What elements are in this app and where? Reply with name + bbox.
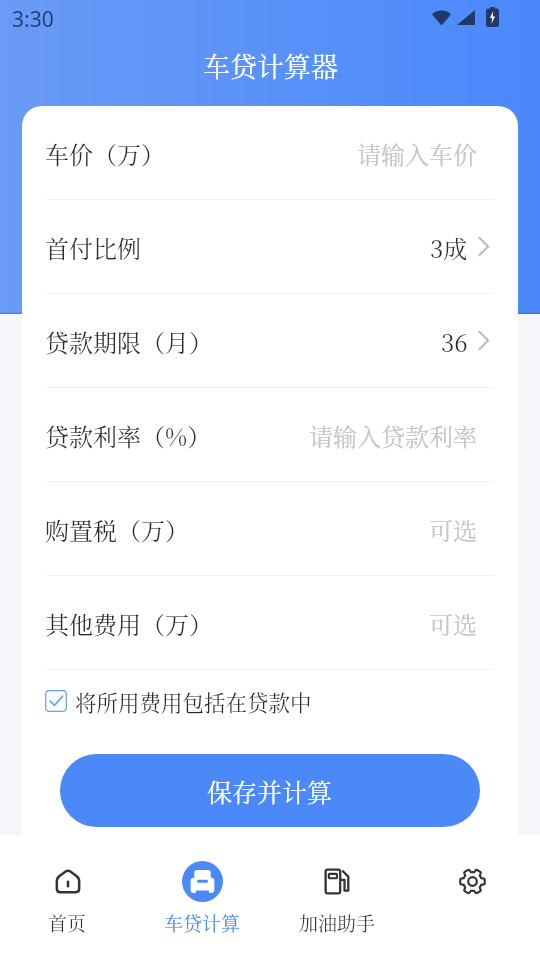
staticText: 将所用费用包括在贷款中 xyxy=(75,686,312,717)
staticText: 首页 xyxy=(48,909,87,936)
staticText: 车贷计算器 xyxy=(203,46,338,85)
button[interactable]: 其他费用（万） xyxy=(22,576,518,669)
staticText: 请输入贷款利率 xyxy=(309,418,477,452)
button[interactable]: Home xyxy=(0,835,135,960)
staticText: 加油助手 xyxy=(299,909,376,936)
button[interactable]: Car loan xyxy=(135,835,270,960)
button[interactable]: 贷款期限（月） xyxy=(22,294,518,387)
staticText: 请输入车价 xyxy=(357,136,477,170)
button[interactable]: Refuel xyxy=(270,835,405,960)
staticText: 3成 xyxy=(430,230,468,264)
staticText: 车价（万） xyxy=(45,136,165,170)
staticText: 贷款期限（月） xyxy=(45,324,213,358)
button[interactable]: 购置税（万） xyxy=(22,482,518,575)
button[interactable]: Settings xyxy=(405,835,540,960)
staticText: 其他费用（万） xyxy=(45,606,213,640)
staticText: 可选 xyxy=(429,512,477,546)
staticText: 保存并计算 xyxy=(207,773,333,809)
button[interactable]: 首付比例 xyxy=(22,200,518,293)
button[interactable]: 将所用费用包括在贷款中 xyxy=(22,670,518,732)
staticText: 36 xyxy=(441,324,468,358)
staticText: 可选 xyxy=(429,606,477,640)
button[interactable]: 车价（万） xyxy=(22,106,518,199)
button[interactable]: 贷款利率（%） xyxy=(22,388,518,481)
staticText: 贷款利率（%） xyxy=(45,418,212,452)
button[interactable]: 保存并计算 xyxy=(60,754,480,827)
staticText: 3:30 xyxy=(12,5,54,34)
staticText: 首付比例 xyxy=(45,230,141,264)
staticText: 车贷计算 xyxy=(164,909,241,936)
staticText: 购置税（万） xyxy=(45,512,189,546)
